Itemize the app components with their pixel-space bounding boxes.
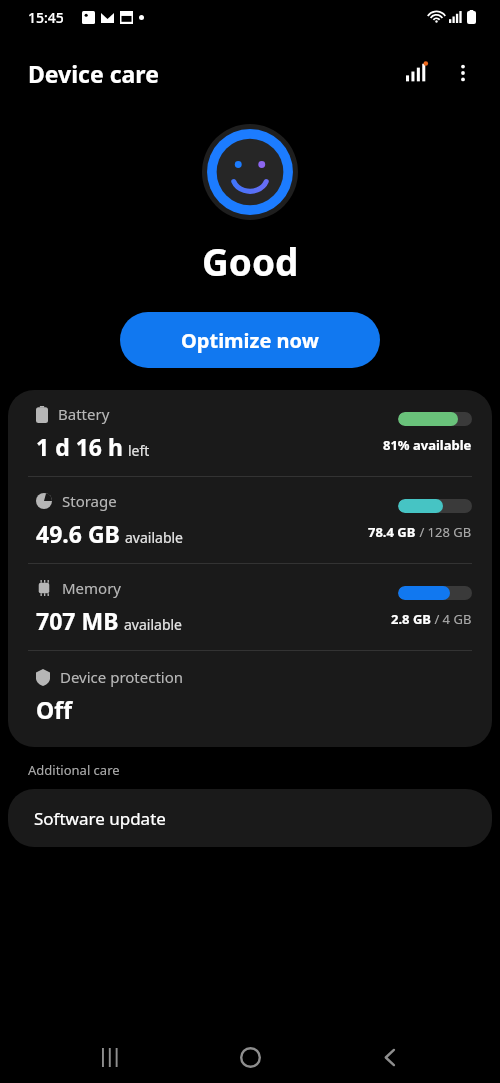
staticText: available: [124, 615, 183, 634]
button[interactable]: Device protection: [8, 651, 492, 747]
staticText: Battery: [58, 404, 110, 424]
button[interactable]: Recents: [82, 1031, 140, 1083]
button[interactable]: Storage: [8, 477, 492, 563]
staticText: 2.8 GB: [391, 610, 431, 628]
button[interactable]: Battery: [8, 390, 492, 476]
button[interactable]: Software update: [8, 789, 492, 847]
button[interactable]: More options: [440, 50, 486, 96]
button[interactable]: Memory: [8, 564, 492, 650]
staticText: 78.4 GB: [368, 523, 416, 541]
staticText: Storage: [62, 491, 117, 511]
staticText: / 128 GB: [416, 523, 472, 541]
staticText: Device care: [28, 58, 159, 89]
staticText: Good: [202, 236, 299, 286]
button[interactable]: Back: [361, 1031, 419, 1083]
button[interactable]: Home: [221, 1031, 279, 1083]
staticText: Software update: [34, 807, 166, 830]
staticText: Optimize now: [181, 327, 319, 354]
staticText: 81% available: [383, 436, 472, 454]
staticText: 49.6 GB: [36, 518, 120, 549]
staticText: 1 d 16 h: [36, 431, 123, 462]
staticText: Off: [36, 694, 72, 725]
staticText: Memory: [62, 578, 122, 598]
staticText: Additional care: [28, 761, 120, 779]
staticText: 707 MB: [36, 605, 119, 636]
staticText: Device protection: [60, 667, 184, 687]
staticText: left: [128, 441, 150, 460]
staticText: available: [125, 528, 184, 547]
button[interactable]: Optimize now: [120, 312, 380, 368]
staticText: 15:45: [28, 8, 64, 27]
staticText: / 4 GB: [431, 610, 472, 628]
button[interactable]: Usage statistics: [394, 50, 440, 96]
